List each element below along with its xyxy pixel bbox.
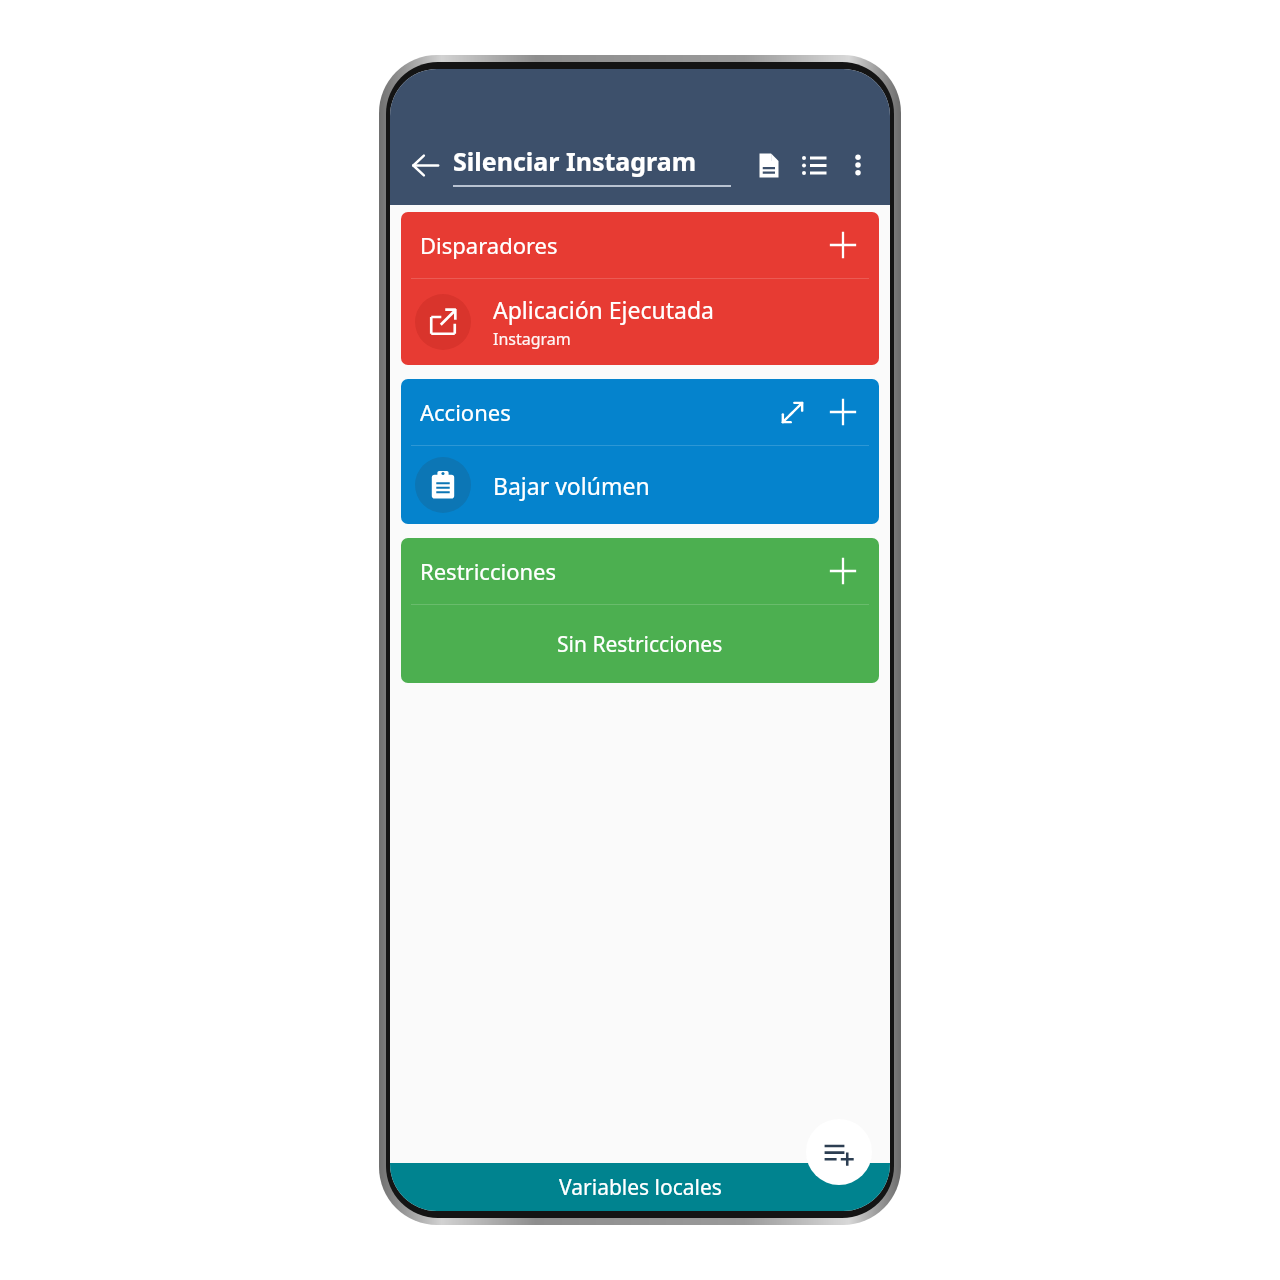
staticText: Bajar volúmen <box>493 470 650 501</box>
button[interactable]: Add variable <box>806 1119 872 1185</box>
button[interactable]: Add to Restricciones <box>820 548 866 594</box>
button[interactable]: Bajar volúmen <box>401 446 879 524</box>
button[interactable]: Sin Restricciones <box>401 605 879 683</box>
staticText: Disparadores <box>420 230 820 260</box>
button[interactable]: Aplicación Ejecutada <box>401 279 879 365</box>
button[interactable]: Expand actions <box>770 390 814 434</box>
button[interactable]: More options <box>837 144 879 186</box>
staticText: Restricciones <box>420 556 820 586</box>
button[interactable]: Add to Disparadores <box>820 222 866 268</box>
button[interactable]: Add to Acciones <box>820 389 866 435</box>
button[interactable]: Description <box>745 142 791 188</box>
staticText: Silenciar Instagram <box>453 144 697 178</box>
staticText: Instagram <box>493 328 571 350</box>
button[interactable]: Silenciar Instagram <box>453 144 737 187</box>
button[interactable]: List view <box>791 142 837 188</box>
staticText: Variables locales <box>559 1173 722 1202</box>
button[interactable]: Variables locales <box>390 1163 890 1211</box>
button[interactable]: Back <box>401 141 449 189</box>
staticText: Acciones <box>420 397 770 427</box>
staticText: Aplicación Ejecutada <box>493 294 714 325</box>
staticText: Sin Restricciones <box>557 630 723 659</box>
